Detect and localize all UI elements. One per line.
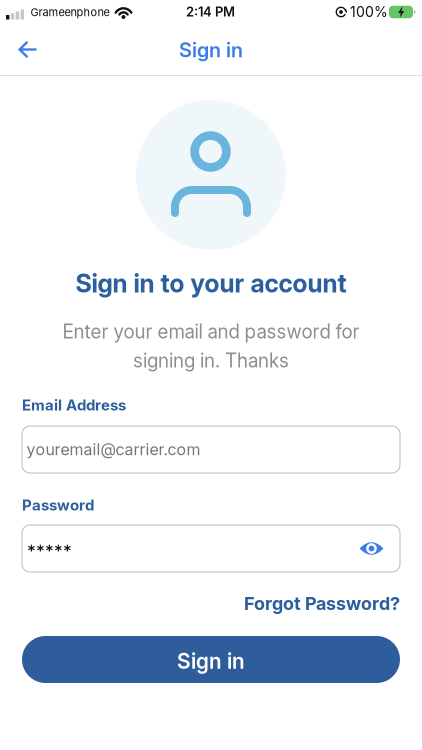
button[interactable]: ***** (22, 525, 400, 572)
staticText: Forgot Password? (244, 593, 400, 614)
staticText: 2:14 PM (186, 4, 235, 19)
button[interactable]: Show password (359, 541, 384, 556)
staticText: Sign in (177, 649, 245, 673)
staticText: 100% (350, 3, 388, 20)
staticText: signing in. Thanks (133, 349, 289, 372)
button[interactable]: Back (18, 41, 36, 57)
staticText: ***** (27, 540, 72, 561)
button[interactable]: youremail@carrier.com (22, 426, 400, 473)
button[interactable]: Forgot Password? (244, 593, 400, 614)
staticText: Sign in to your account (75, 269, 346, 298)
staticText: Enter your email and password for (62, 320, 359, 343)
staticText: youremail@carrier.com (26, 440, 200, 459)
staticText: Password (22, 496, 94, 514)
staticText: Grameenphone (30, 6, 109, 19)
staticText: Email Address (22, 396, 126, 414)
button[interactable]: Sign in (22, 636, 400, 683)
staticText: Sign in (179, 38, 243, 62)
